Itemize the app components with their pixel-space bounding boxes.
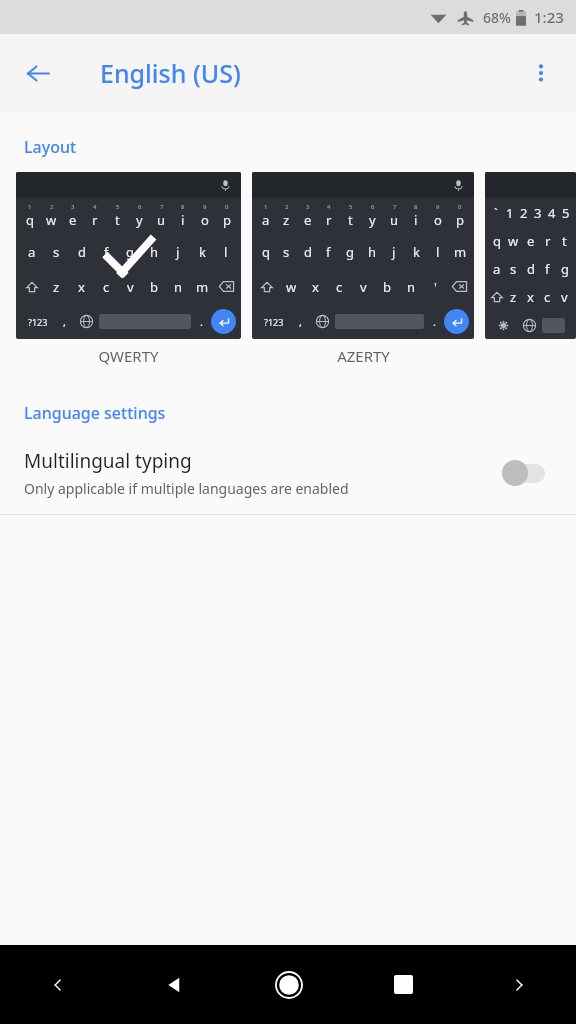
- staticText: 9: [203, 203, 207, 211]
- staticText: g: [346, 243, 354, 261]
- staticText: AZERTY: [337, 346, 390, 366]
- staticText: 1:23: [534, 7, 564, 27]
- staticText: l: [224, 243, 228, 261]
- button[interactable]: `: [485, 172, 576, 339]
- staticText: l: [436, 243, 440, 261]
- staticText: 1: [506, 204, 514, 222]
- staticText: .: [200, 314, 203, 329]
- staticText: w: [286, 278, 297, 296]
- staticText: 68%: [483, 8, 511, 27]
- staticText: 5: [349, 203, 353, 211]
- staticText: c: [103, 278, 110, 296]
- staticText: j: [392, 243, 396, 261]
- staticText: d: [304, 243, 312, 261]
- staticText: g: [126, 243, 134, 261]
- button[interactable]: Multilingual typing: [0, 446, 576, 514]
- staticText: e: [69, 211, 77, 229]
- staticText: Language settings: [24, 402, 166, 424]
- button[interactable]: Previous: [0, 945, 116, 1024]
- staticText: 4: [548, 204, 556, 222]
- staticText: r: [92, 211, 98, 229]
- staticText: o: [201, 211, 209, 229]
- staticText: v: [360, 278, 367, 296]
- staticText: m: [196, 278, 209, 296]
- staticText: 4: [93, 203, 97, 211]
- staticText: Only applicable if multiple languages ar…: [24, 479, 349, 498]
- staticText: w: [508, 232, 519, 250]
- staticText: n: [407, 278, 416, 296]
- staticText: s: [53, 243, 60, 261]
- staticText: f: [326, 243, 331, 261]
- staticText: p: [223, 211, 231, 229]
- staticText: ': [434, 278, 437, 296]
- button[interactable]: More options: [516, 48, 566, 98]
- staticText: x: [78, 278, 85, 296]
- staticText: k: [199, 243, 206, 261]
- staticText: t: [562, 232, 567, 250]
- button[interactable]: Next: [461, 945, 576, 1024]
- staticText: s: [283, 243, 290, 261]
- staticText: h: [150, 243, 159, 261]
- staticText: b: [383, 278, 391, 296]
- staticText: v: [561, 288, 568, 306]
- staticText: a: [28, 243, 36, 261]
- staticText: e: [527, 232, 535, 250]
- button[interactable]: 1: [16, 172, 241, 339]
- button[interactable]: Back: [116, 945, 231, 1024]
- staticText: y: [136, 211, 143, 229]
- staticText: y: [369, 211, 376, 229]
- staticText: q: [26, 211, 34, 229]
- staticText: k: [413, 243, 420, 261]
- staticText: .: [433, 314, 436, 329]
- staticText: 1: [264, 203, 268, 211]
- staticText: w: [46, 211, 57, 229]
- staticText: z: [510, 288, 517, 306]
- staticText: 3: [306, 203, 310, 211]
- staticText: b: [150, 278, 158, 296]
- staticText: s: [510, 260, 517, 278]
- staticText: z: [283, 211, 290, 229]
- staticText: 2: [285, 203, 289, 211]
- staticText: 7: [393, 203, 397, 211]
- staticText: t: [348, 211, 353, 229]
- staticText: f: [545, 260, 550, 278]
- staticText: d: [527, 260, 535, 278]
- staticText: q: [262, 243, 270, 261]
- button[interactable]: Home: [231, 945, 346, 1024]
- staticText: r: [326, 211, 332, 229]
- staticText: English (US): [100, 56, 241, 90]
- staticText: r: [545, 232, 551, 250]
- button[interactable]: Back: [12, 47, 64, 99]
- staticText: f: [104, 243, 109, 261]
- staticText: 0: [225, 203, 229, 211]
- staticText: i: [414, 211, 418, 229]
- staticText: c: [336, 278, 343, 296]
- staticText: ?123: [28, 316, 48, 328]
- staticText: d: [78, 243, 86, 261]
- staticText: 0: [458, 203, 462, 211]
- staticText: m: [454, 243, 467, 261]
- button[interactable]: 1: [252, 172, 474, 339]
- staticText: ,: [63, 314, 66, 329]
- staticText: i: [181, 211, 185, 229]
- staticText: ?123: [264, 316, 284, 328]
- staticText: 5: [116, 203, 120, 211]
- staticText: q: [493, 232, 501, 250]
- staticText: x: [312, 278, 319, 296]
- staticText: `: [494, 204, 498, 222]
- button[interactable]: Recents: [346, 945, 461, 1024]
- staticText: a: [262, 211, 270, 229]
- staticText: ,: [299, 314, 302, 329]
- staticText: o: [434, 211, 442, 229]
- staticText: h: [368, 243, 377, 261]
- staticText: c: [544, 288, 551, 306]
- staticText: 2: [50, 203, 54, 211]
- staticText: 3: [71, 203, 75, 211]
- staticText: 4: [327, 203, 331, 211]
- staticText: t: [115, 211, 120, 229]
- staticText: 5: [562, 204, 570, 222]
- staticText: QWERTY: [98, 346, 159, 366]
- staticText: 8: [181, 203, 185, 211]
- staticText: e: [304, 211, 312, 229]
- staticText: 6: [138, 203, 142, 211]
